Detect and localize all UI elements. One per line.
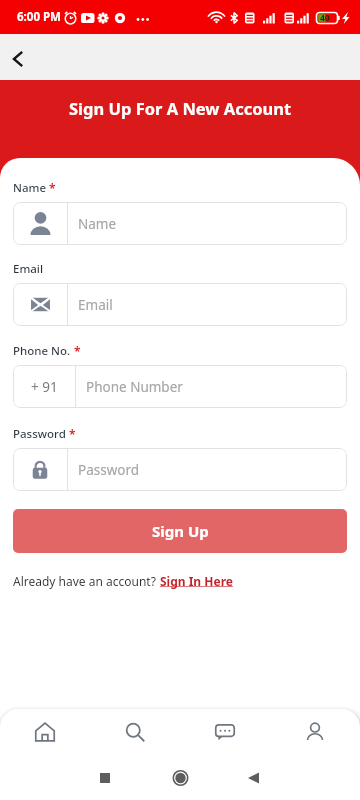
staticText: Password — [78, 461, 140, 479]
staticText: Sign In Here — [160, 573, 233, 589]
staticText: + 91 — [31, 378, 58, 396]
staticText: * — [74, 343, 81, 359]
staticText: Phone Number — [86, 378, 183, 396]
button[interactable]: Profile — [270, 709, 360, 754]
button[interactable]: Email — [13, 283, 347, 326]
button[interactable]: Sign Up — [13, 509, 347, 553]
button[interactable]: Sign In Here — [160, 573, 233, 589]
button[interactable]: Search — [90, 709, 180, 754]
staticText: Sign Up For A New Account — [69, 97, 292, 119]
button[interactable]: Back — [0, 37, 41, 81]
button[interactable]: Messages — [180, 709, 270, 754]
staticText: * — [49, 180, 56, 196]
staticText: Email — [13, 261, 44, 277]
staticText: Phone No. — [13, 343, 71, 359]
staticText: Already have an account? — [13, 573, 160, 589]
staticText: Name — [13, 180, 46, 196]
button[interactable]: Password — [13, 448, 347, 491]
staticText: * — [69, 426, 76, 442]
button[interactable]: Name — [13, 202, 347, 245]
staticText: Sign Up — [152, 521, 209, 541]
button[interactable]: Home — [0, 709, 90, 754]
staticText: 40 — [320, 12, 330, 24]
staticText: Password — [13, 426, 66, 442]
staticText: Name — [78, 215, 117, 233]
button[interactable]: + 91 — [13, 365, 347, 408]
staticText: Email — [78, 296, 113, 314]
staticText: 6:00 PM — [17, 9, 61, 25]
